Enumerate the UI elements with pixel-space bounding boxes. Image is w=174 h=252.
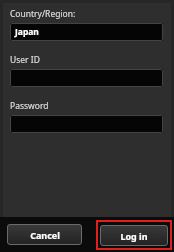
staticText: Password [10,100,49,112]
staticText: Country/Region: [10,8,76,20]
staticText: User ID [10,54,40,66]
button[interactable]: Japan [10,23,163,41]
button[interactable] [10,115,163,133]
staticText: Japan [15,26,39,38]
staticText: Cancel [30,229,60,241]
button[interactable]: Log in [100,225,168,246]
button[interactable] [10,69,163,87]
button[interactable]: Cancel [7,224,82,245]
staticText: Log in [120,230,148,242]
